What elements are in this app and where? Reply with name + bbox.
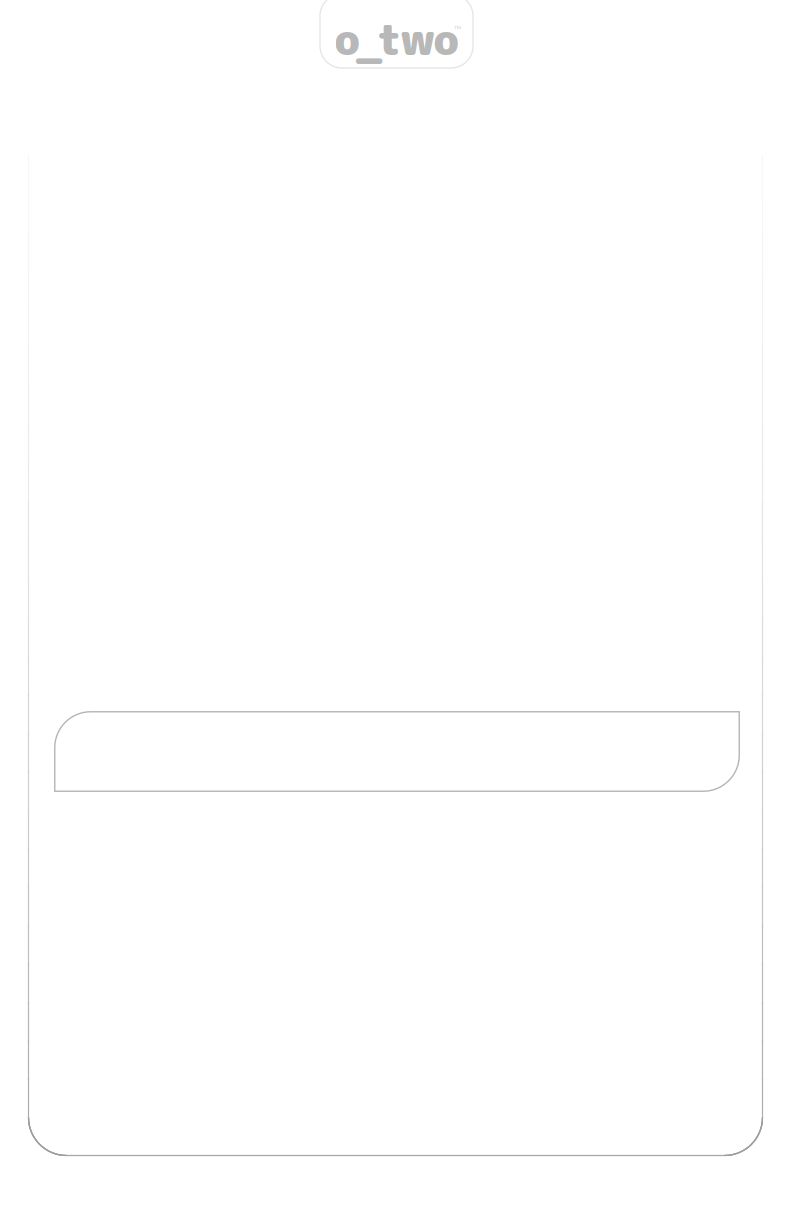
staticText: ™ [454,23,461,35]
button[interactable]: o_two [320,0,473,68]
button[interactable]: Message [54,711,740,792]
staticText: o_two [334,9,458,69]
